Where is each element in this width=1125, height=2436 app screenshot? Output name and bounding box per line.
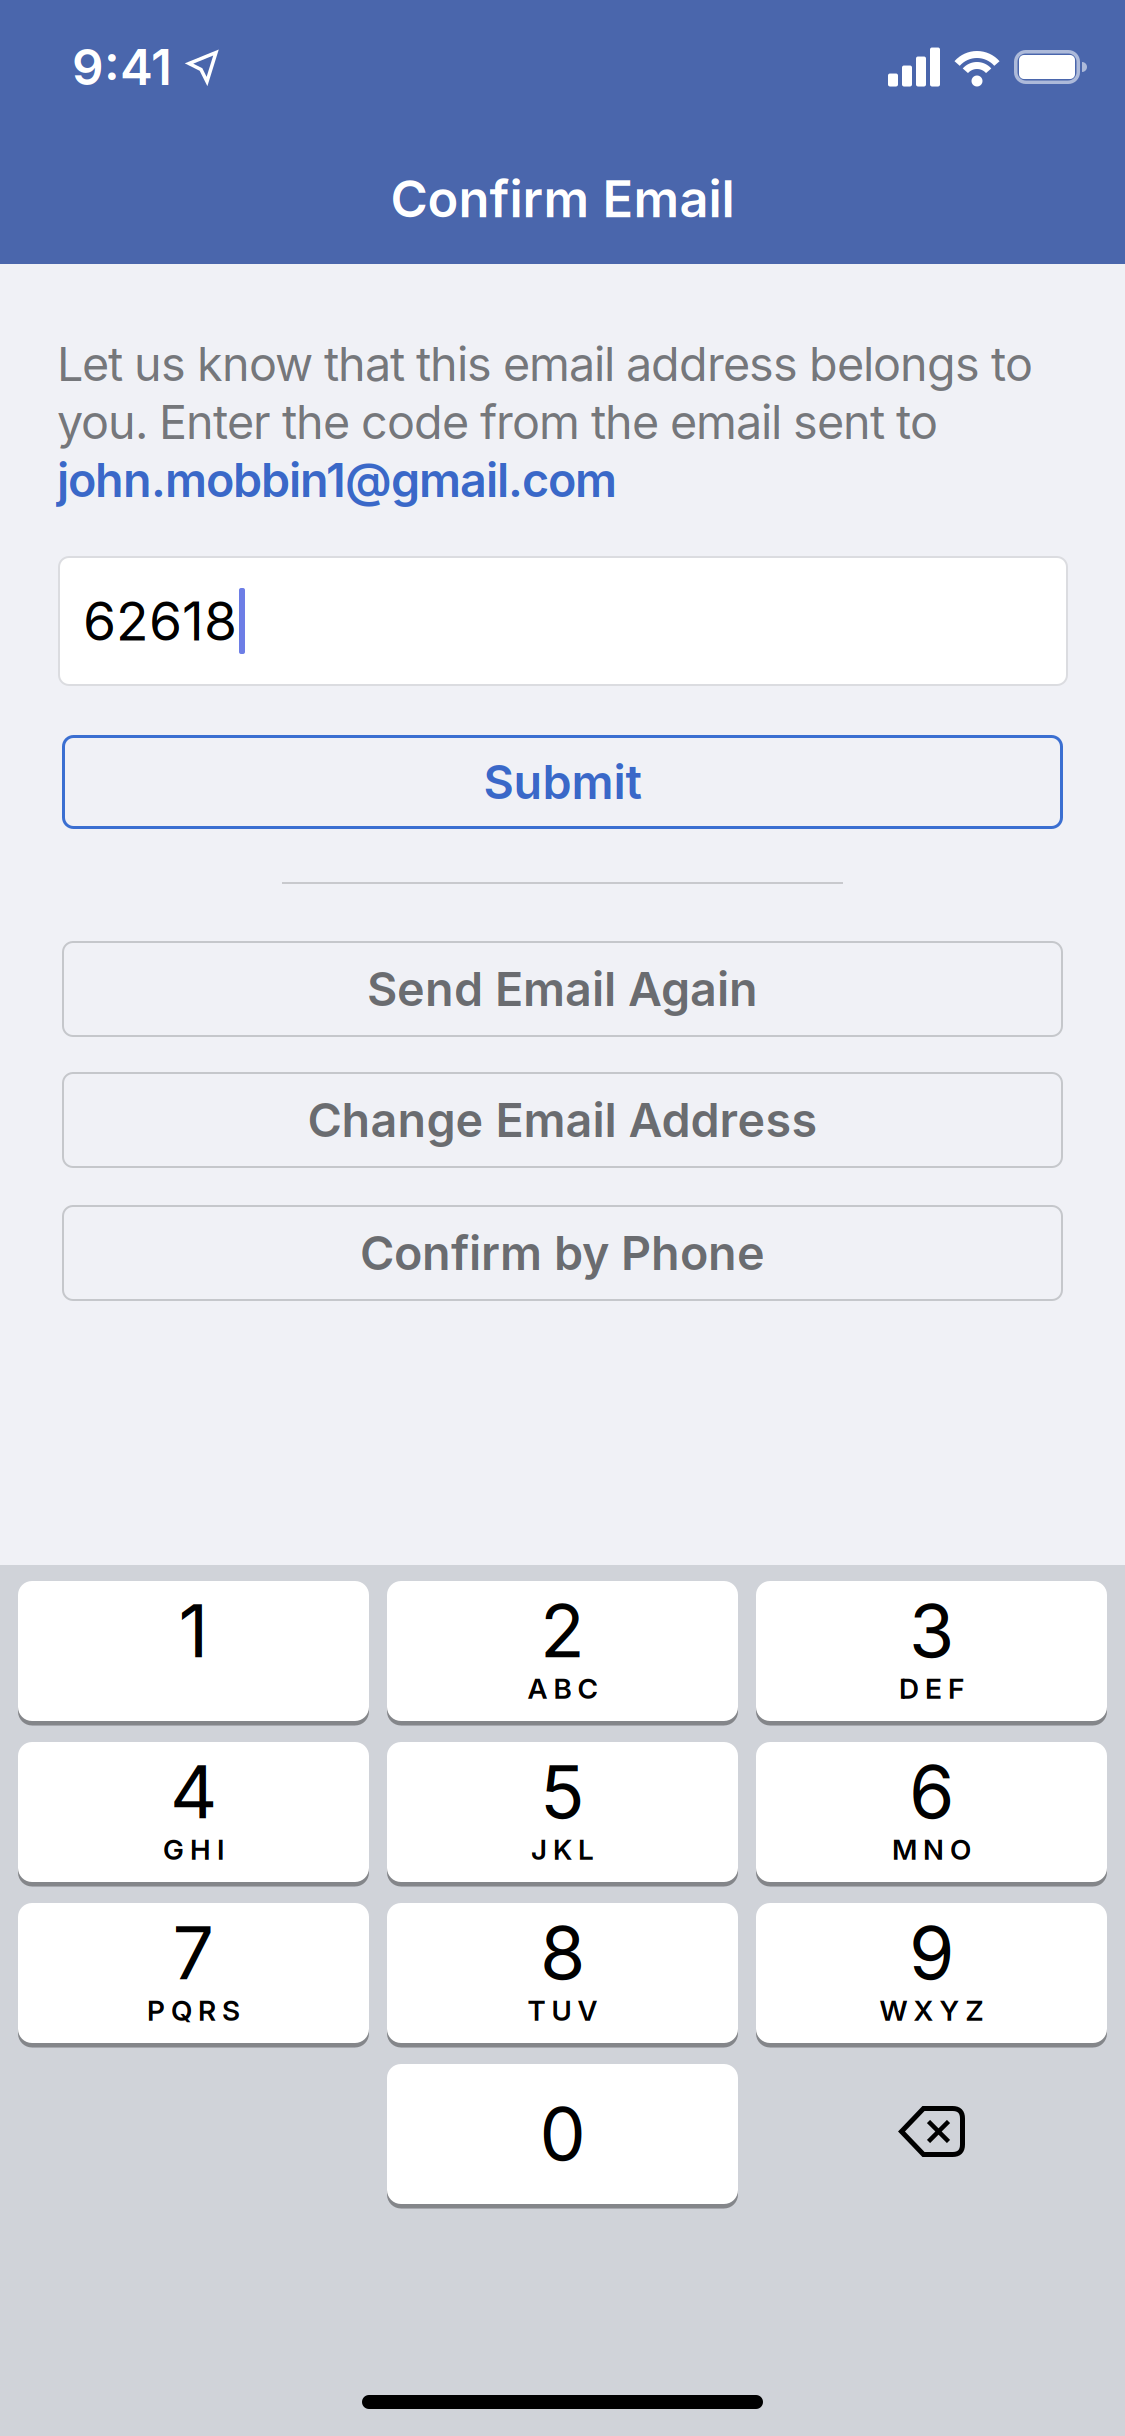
button[interactable]: 9 — [756, 1903, 1107, 2046]
button[interactable]: 2 — [387, 1581, 738, 1724]
staticText: DEF — [899, 1672, 964, 1705]
staticText: 62618 — [83, 589, 237, 652]
staticText: 5 — [540, 1748, 585, 1835]
staticText: Submit — [483, 754, 641, 810]
staticText: Confirm Email — [390, 169, 734, 229]
button[interactable]: 6 — [756, 1742, 1107, 1885]
button[interactable]: 5 — [387, 1742, 738, 1885]
button[interactable]: 0 — [387, 2064, 738, 2207]
staticText: TUV — [527, 1994, 597, 2027]
button[interactable]: Delete — [756, 2064, 1107, 2207]
staticText: 0 — [539, 2090, 585, 2177]
staticText: JKL — [531, 1833, 594, 1866]
staticText: PQRS — [147, 1994, 240, 2027]
button[interactable]: Confirm by Phone — [62, 1205, 1063, 1301]
staticText: john.mobbin1@gmail.com — [57, 452, 617, 508]
button[interactable]: 7 — [18, 1903, 369, 2046]
button[interactable]: 3 — [756, 1581, 1107, 1724]
staticText: Send Email Again — [367, 961, 758, 1017]
button[interactable]: 1 — [18, 1581, 369, 1724]
staticText: Change Email Address — [307, 1092, 817, 1148]
staticText: Let us know that this email address belo… — [57, 336, 1033, 392]
staticText: you. Enter the code from the email sent … — [57, 394, 938, 450]
staticText: 1 — [178, 1587, 208, 1674]
staticText: WXYZ — [879, 1994, 983, 2027]
button[interactable]: 4 — [18, 1742, 369, 1885]
staticText: 4 — [170, 1748, 217, 1835]
button[interactable]: Submit — [62, 735, 1063, 829]
button[interactable]: john.mobbin1@gmail.com — [0, 451, 617, 509]
staticText: GHI — [163, 1833, 224, 1866]
button[interactable]: Change Email Address — [62, 1072, 1063, 1168]
staticText: 8 — [540, 1909, 585, 1996]
staticText: MNO — [892, 1833, 971, 1866]
staticText: 7 — [172, 1909, 214, 1996]
staticText: Confirm by Phone — [360, 1225, 765, 1281]
staticText: 3 — [909, 1587, 954, 1674]
button[interactable]: Send Email Again — [62, 941, 1063, 1037]
staticText: 2 — [540, 1587, 585, 1674]
staticText: 9 — [909, 1909, 954, 1996]
staticText: 6 — [909, 1748, 954, 1835]
staticText: ABC — [527, 1672, 597, 1705]
button[interactable]: 8 — [387, 1903, 738, 2046]
staticText: 9:41 — [72, 38, 172, 96]
